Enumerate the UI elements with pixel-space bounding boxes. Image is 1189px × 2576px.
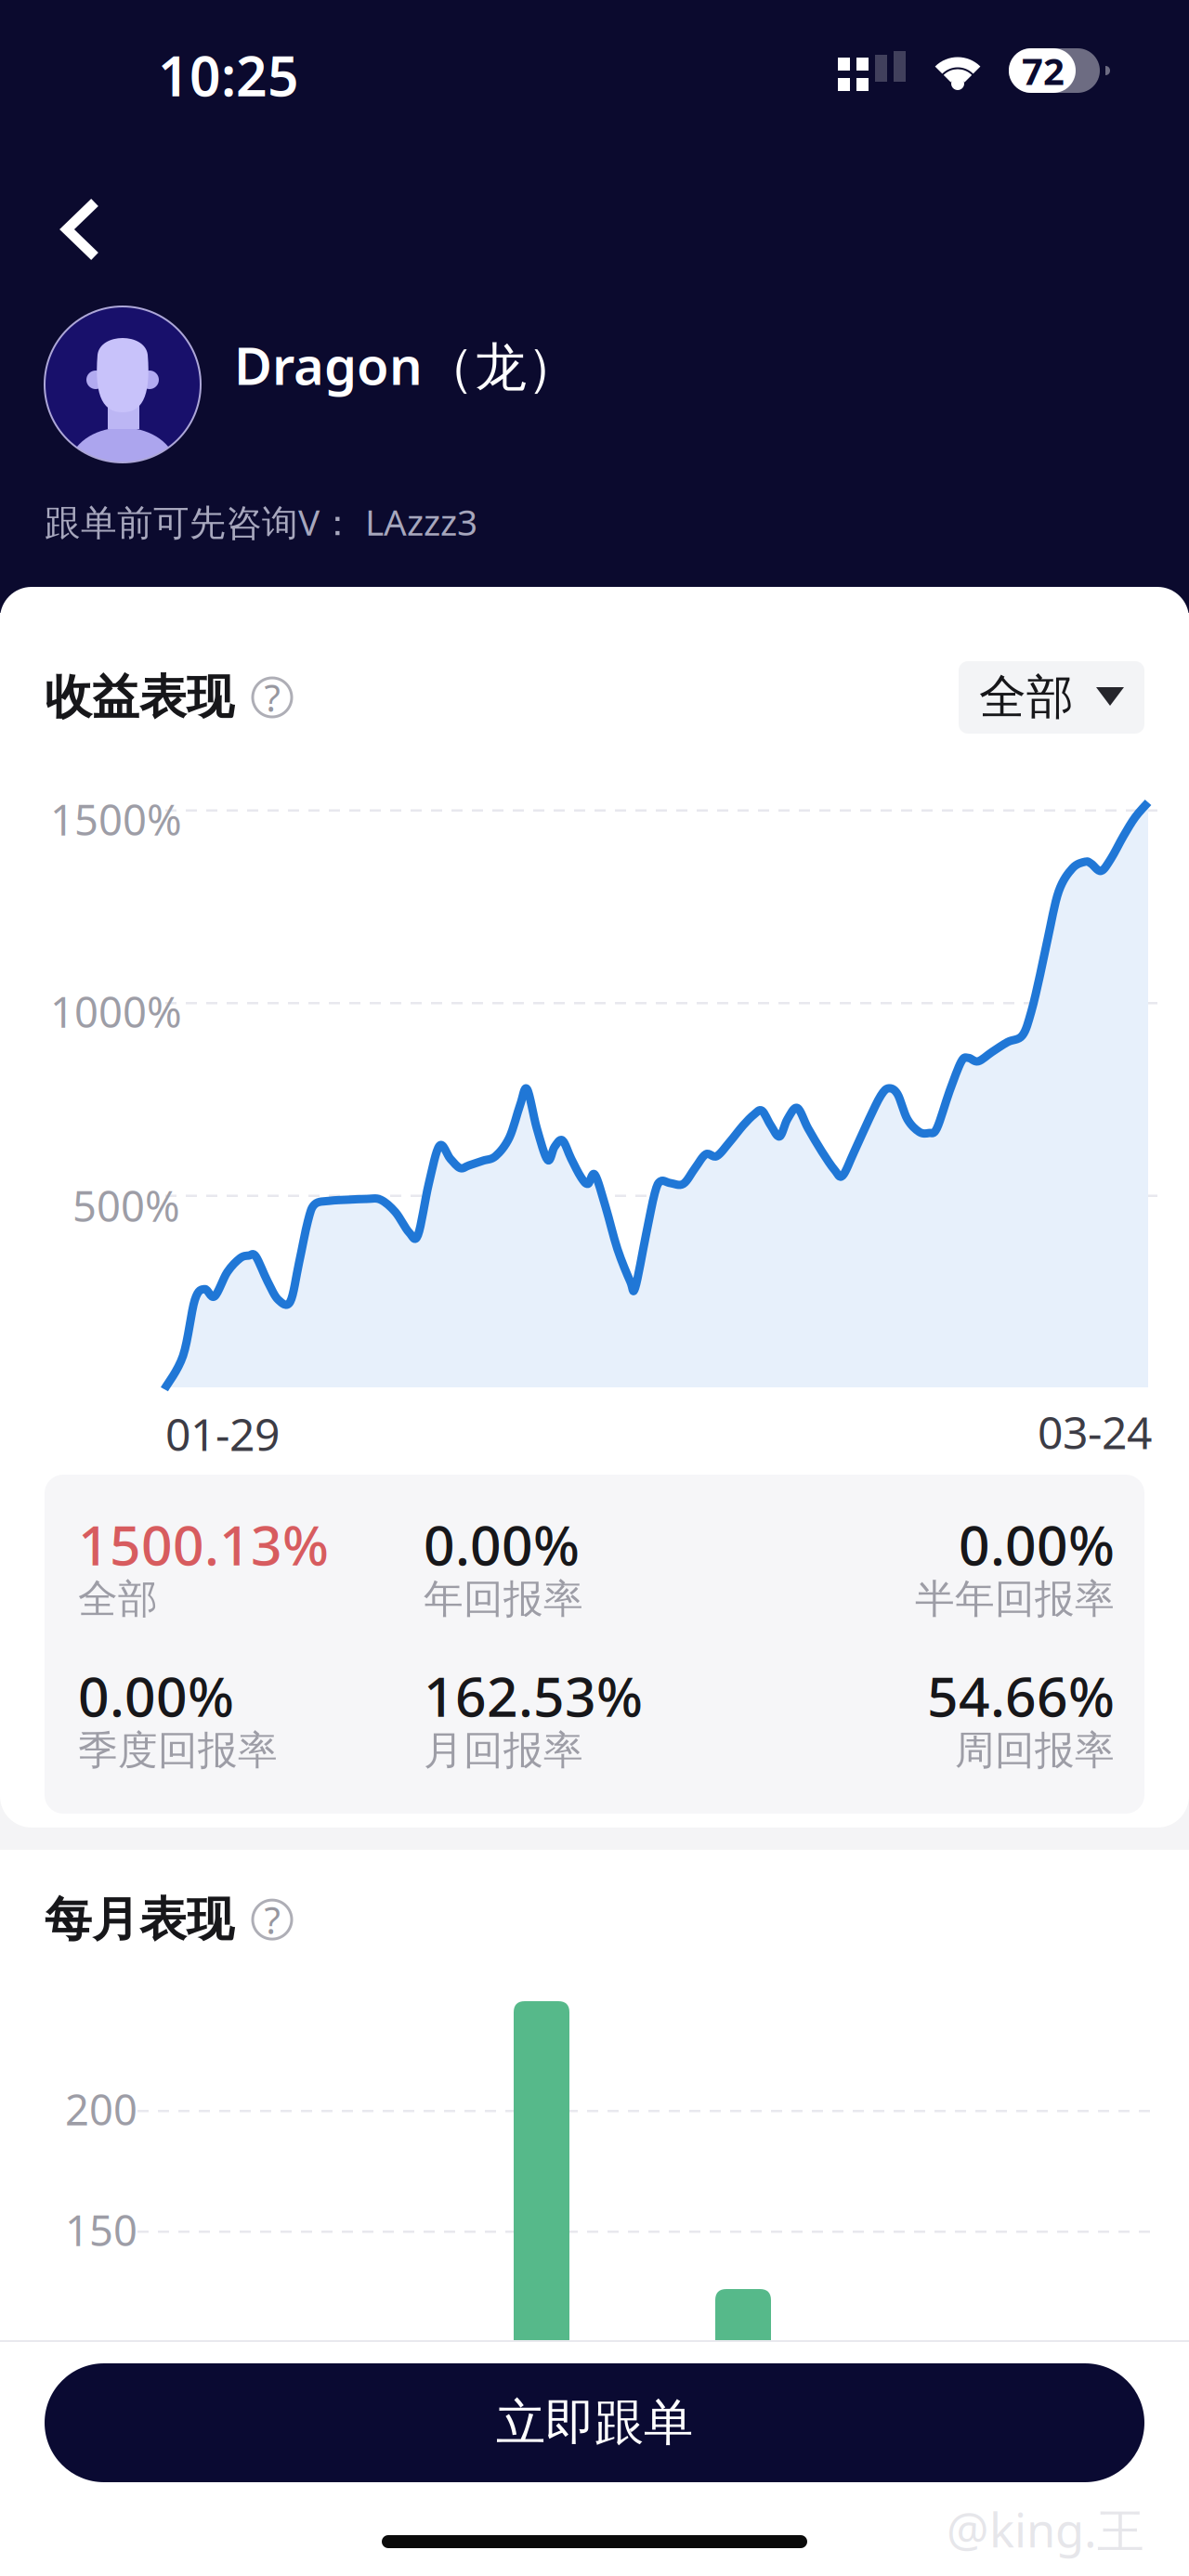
staticText: 150	[65, 2202, 137, 2258]
staticText: 全部	[979, 669, 1074, 726]
staticText: Dragon（龙）	[234, 330, 579, 400]
button[interactable]: 全部	[959, 661, 1144, 734]
staticText: 季度回报率	[78, 1726, 278, 1775]
staticText: 72	[1022, 46, 1065, 95]
staticText: 0.00%	[78, 1659, 234, 1732]
staticText: 月回报率	[424, 1726, 583, 1775]
staticText: 0.00%	[424, 1508, 580, 1580]
staticText: 立即跟单	[496, 2392, 693, 2453]
staticText: 跟单前可先咨询V： LAzzz3	[45, 498, 477, 545]
staticText: 1500%	[50, 791, 182, 847]
staticText: 周回报率	[955, 1726, 1115, 1775]
staticText: 半年回报率	[915, 1575, 1115, 1623]
staticText: 0.00%	[959, 1508, 1115, 1580]
staticText: 162.53%	[424, 1659, 643, 1732]
staticText: 1000%	[50, 983, 182, 1039]
staticText: 每月表现	[45, 1891, 234, 1948]
staticText: 500%	[72, 1177, 180, 1233]
button[interactable]: Back	[0, 176, 145, 282]
staticText: 01-29	[165, 1404, 280, 1463]
staticText: 年回报率	[424, 1575, 583, 1623]
staticText: 200	[65, 2081, 137, 2137]
staticText: 收益表现	[45, 669, 234, 726]
staticText: @king.王	[947, 2498, 1144, 2561]
staticText: 全部	[78, 1575, 158, 1623]
staticText: 1500.13%	[78, 1508, 329, 1580]
staticText: ?	[264, 1895, 280, 1944]
staticText: 03-24	[1038, 1402, 1152, 1461]
staticText: 54.66%	[927, 1659, 1115, 1732]
staticText: 10:25	[158, 39, 299, 111]
staticText: ?	[264, 673, 280, 722]
button[interactable]: 立即跟单	[45, 2363, 1144, 2482]
